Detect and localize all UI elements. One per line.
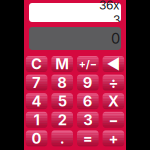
staticText: 4 [32,92,42,110]
staticText: X [108,92,119,110]
staticText: = [83,129,93,147]
button[interactable]: 9 [77,75,99,91]
staticText: 3 [83,111,92,129]
button[interactable]: 1 [26,112,47,128]
staticText: − [108,111,118,129]
staticText: 2 [58,111,67,129]
staticText: 36x [99,0,120,12]
staticText: C [31,55,42,73]
button[interactable]: 8 [51,75,73,91]
staticText: 0 [32,129,42,147]
button[interactable]: 3 [77,112,99,128]
button[interactable]: 7 [26,75,47,91]
button[interactable]: 2 [51,112,73,128]
staticText: 0 [111,30,120,47]
button[interactable]: . [51,130,73,146]
button[interactable]: ◀ [103,56,124,72]
staticText: 6 [83,92,93,110]
button[interactable]: +/− [77,56,99,72]
staticText: 5 [58,92,67,110]
button[interactable]: 6 [77,93,99,109]
button[interactable]: 4 [26,93,47,109]
button[interactable]: + [103,130,124,146]
staticText: + [108,129,118,147]
staticText: M [55,55,69,73]
button[interactable]: 0 [26,130,47,146]
staticText: +/− [79,57,97,70]
staticText: 1 [34,111,40,129]
button[interactable]: 5 [51,93,73,109]
button[interactable]: M [51,56,73,72]
staticText: 3 [113,12,120,27]
staticText: . [60,129,65,147]
staticText: ◀ [106,55,120,73]
staticText: 8 [57,74,67,91]
button[interactable]: − [103,112,124,128]
button[interactable]: = [77,130,99,146]
button[interactable]: ÷ [103,75,124,91]
staticText: 9 [83,74,93,91]
staticText: ÷ [108,74,118,91]
staticText: 7 [32,74,41,91]
button[interactable]: C [26,56,47,72]
button[interactable]: X [103,93,124,109]
